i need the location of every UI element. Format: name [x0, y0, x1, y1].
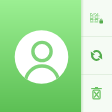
button[interactable]: Sync [81, 37, 112, 74]
button[interactable]: Profile [0, 0, 81, 112]
button[interactable]: Secure QR code [81, 0, 112, 36]
button[interactable]: Delete [81, 75, 112, 112]
